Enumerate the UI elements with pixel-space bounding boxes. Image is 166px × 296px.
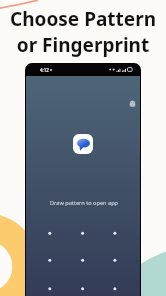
button[interactable]: Messages bbox=[73, 134, 93, 154]
staticText: Choose Pattern or Fingerprint bbox=[10, 6, 156, 58]
button[interactable]: Fingerprint unlock bbox=[126, 97, 139, 110]
staticText: Draw pattern to open app bbox=[50, 199, 119, 207]
staticText: 4:12 bbox=[40, 67, 49, 73]
